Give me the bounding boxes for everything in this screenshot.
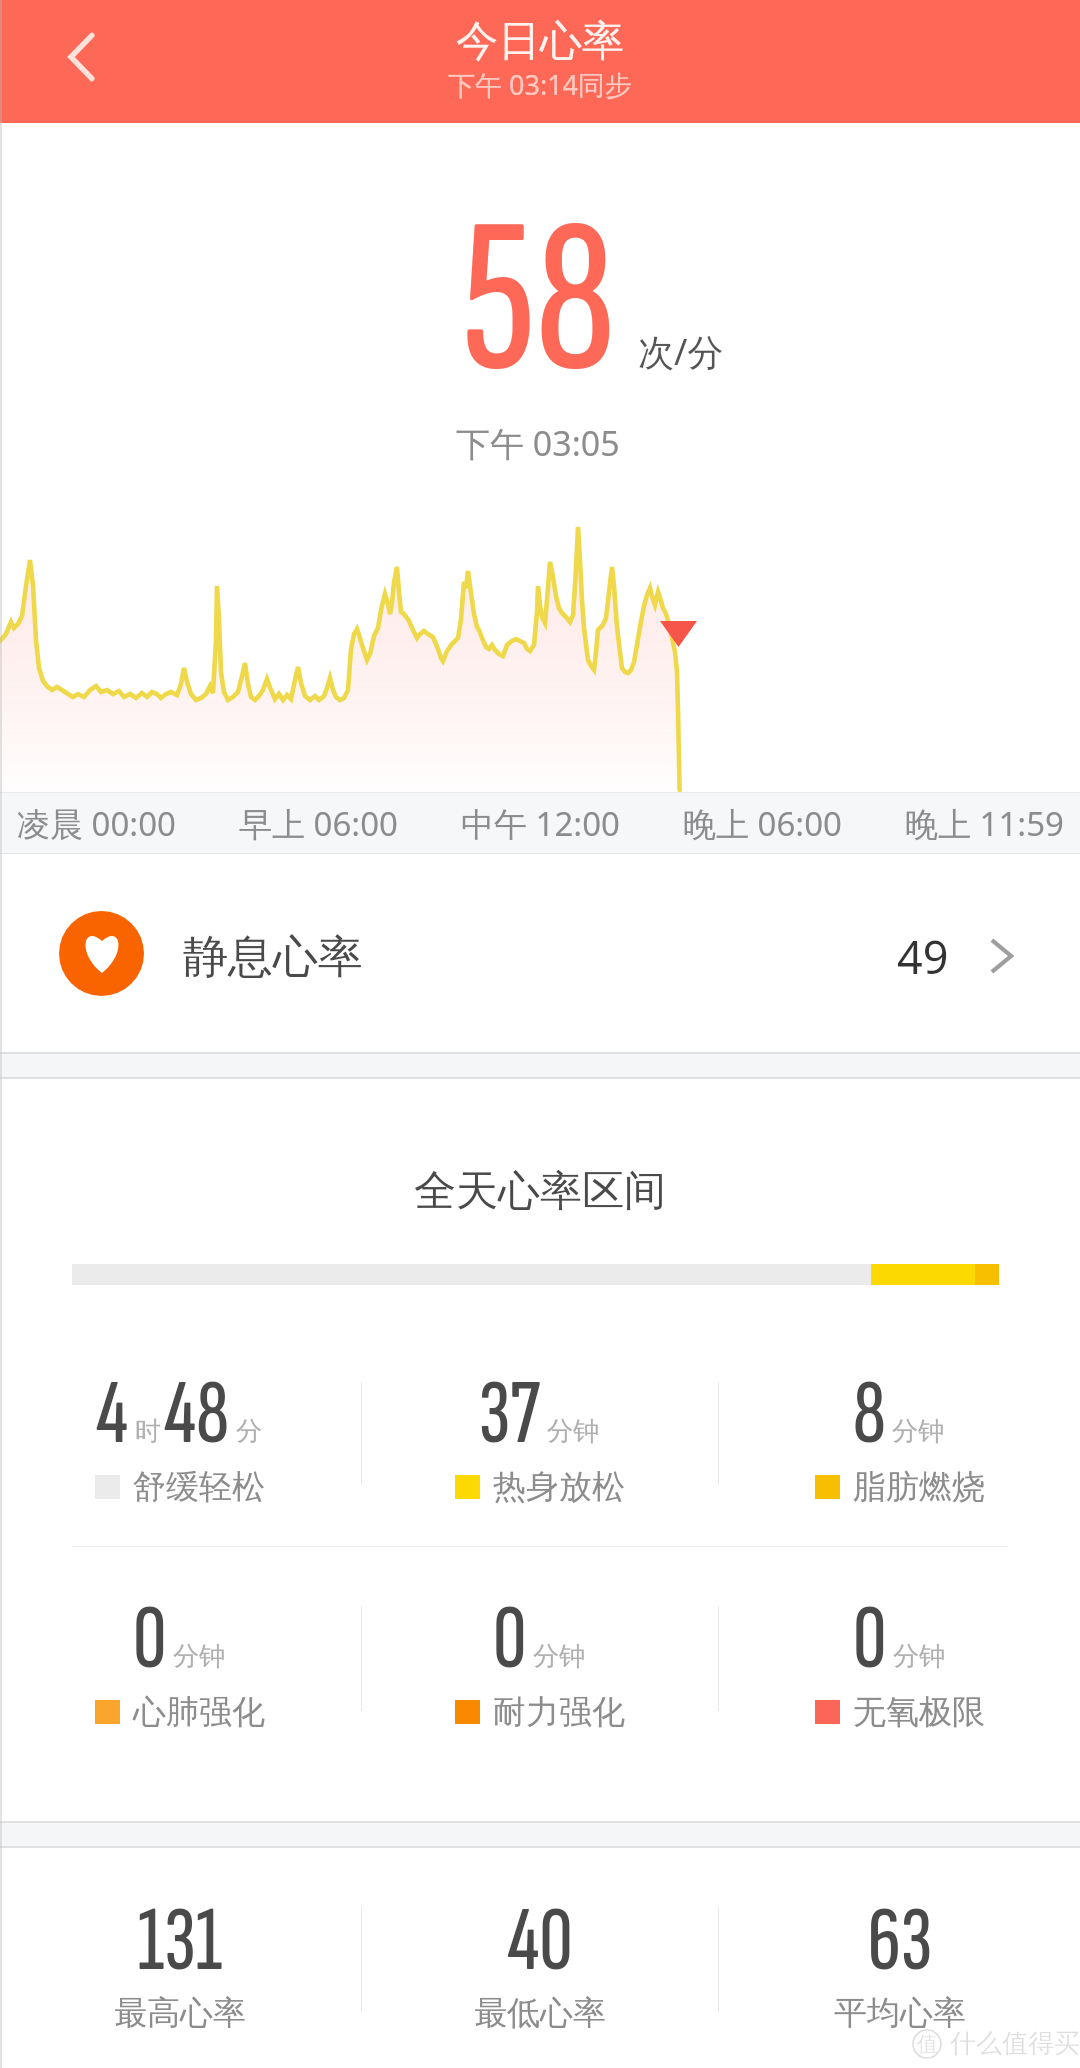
staticText: 0 <box>133 1586 167 1694</box>
staticText: 分钟 <box>893 1640 945 1673</box>
staticText: 中午 12:00 <box>461 801 620 846</box>
staticText: 值 <box>917 2031 938 2057</box>
staticText: 什么值得买 <box>950 2027 1080 2060</box>
staticText: 58 <box>462 172 615 434</box>
staticText: 全天心率区间 <box>0 1165 1080 1218</box>
staticText: 131 <box>0 1888 680 1996</box>
staticText: 4 <box>96 1361 129 1469</box>
staticText: 下午 03:14同步 <box>0 66 1080 103</box>
button[interactable]: 静息心率 <box>0 854 1080 1052</box>
staticText: 今日心率 <box>0 15 1080 68</box>
staticText: 分钟 <box>892 1415 944 1448</box>
staticText: 49 <box>897 926 949 987</box>
staticText: 40 <box>40 1888 1040 1996</box>
staticText: 0 <box>853 1586 887 1694</box>
staticText: 凌晨 00:00 <box>17 801 176 846</box>
staticText: 舒缓轻松 <box>133 1466 265 1508</box>
staticText: 分钟 <box>547 1415 599 1448</box>
staticText: 分钟 <box>533 1640 585 1673</box>
staticText: 37 <box>479 1361 541 1469</box>
staticText: 0 <box>493 1586 527 1694</box>
staticText: 平均心率 <box>400 1992 1080 2034</box>
staticText: 最高心率 <box>0 1992 680 2034</box>
staticText: 63 <box>400 1888 1080 1996</box>
staticText: 分 <box>236 1415 262 1448</box>
staticText: 时 <box>135 1415 161 1448</box>
staticText: 无氧极限 <box>853 1691 985 1733</box>
staticText: 心肺强化 <box>133 1691 265 1733</box>
staticText: 脂肪燃烧 <box>853 1466 985 1508</box>
staticText: 静息心率 <box>183 929 363 986</box>
staticText: 耐力强化 <box>493 1691 625 1733</box>
button[interactable]: Back <box>53 29 109 85</box>
staticText: 8 <box>853 1361 886 1469</box>
staticText: 次/分 <box>638 327 724 376</box>
staticText: 最低心率 <box>40 1992 1040 2034</box>
staticText: 早上 06:00 <box>239 801 398 846</box>
staticText: 热身放松 <box>493 1466 625 1508</box>
staticText: 48 <box>164 1361 230 1469</box>
staticText: 晚上 11:59 <box>905 801 1064 846</box>
staticText: 下午 03:05 <box>456 420 620 466</box>
staticText: 分钟 <box>173 1640 225 1673</box>
staticText: 晚上 06:00 <box>683 801 842 846</box>
